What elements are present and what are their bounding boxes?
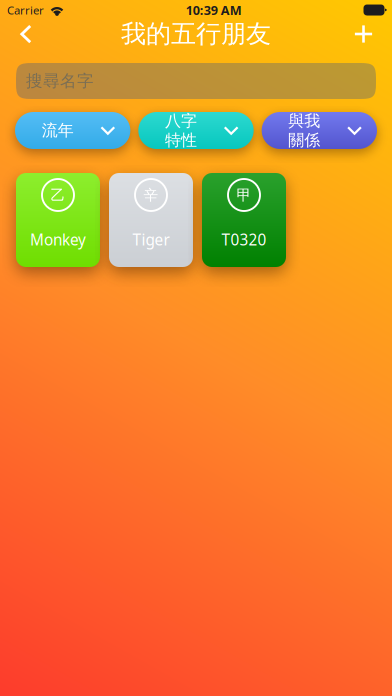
button[interactable]: Back — [9, 16, 43, 51]
staticText: 關係 — [288, 130, 320, 150]
staticText: 辛 — [143, 186, 158, 204]
staticText: 特性 — [165, 130, 197, 150]
staticText: 我的五行朋友 — [121, 18, 271, 50]
button[interactable]: 乙 — [16, 173, 100, 267]
button[interactable]: 八字 — [138, 112, 254, 149]
staticText: Carrier — [7, 2, 44, 18]
staticText: 乙 — [50, 186, 65, 204]
staticText: Monkey — [30, 229, 86, 250]
staticText: 與我 — [288, 111, 320, 131]
staticText: Tiger — [132, 229, 169, 250]
button[interactable]: 辛 — [109, 173, 193, 267]
button[interactable]: Add friend — [344, 16, 383, 51]
staticText: 甲 — [236, 186, 251, 204]
staticText: 流年 — [42, 120, 74, 141]
button[interactable]: 流年 — [15, 112, 130, 149]
staticText: T0320 — [221, 229, 266, 250]
button[interactable]: 搜尋名字 — [16, 63, 376, 99]
button[interactable]: 與我 — [262, 112, 377, 149]
staticText: 搜尋名字 — [26, 71, 94, 91]
staticText: 八字 — [165, 111, 197, 131]
button[interactable]: 甲 — [202, 173, 286, 267]
staticText: 10:39 AM — [186, 1, 242, 19]
